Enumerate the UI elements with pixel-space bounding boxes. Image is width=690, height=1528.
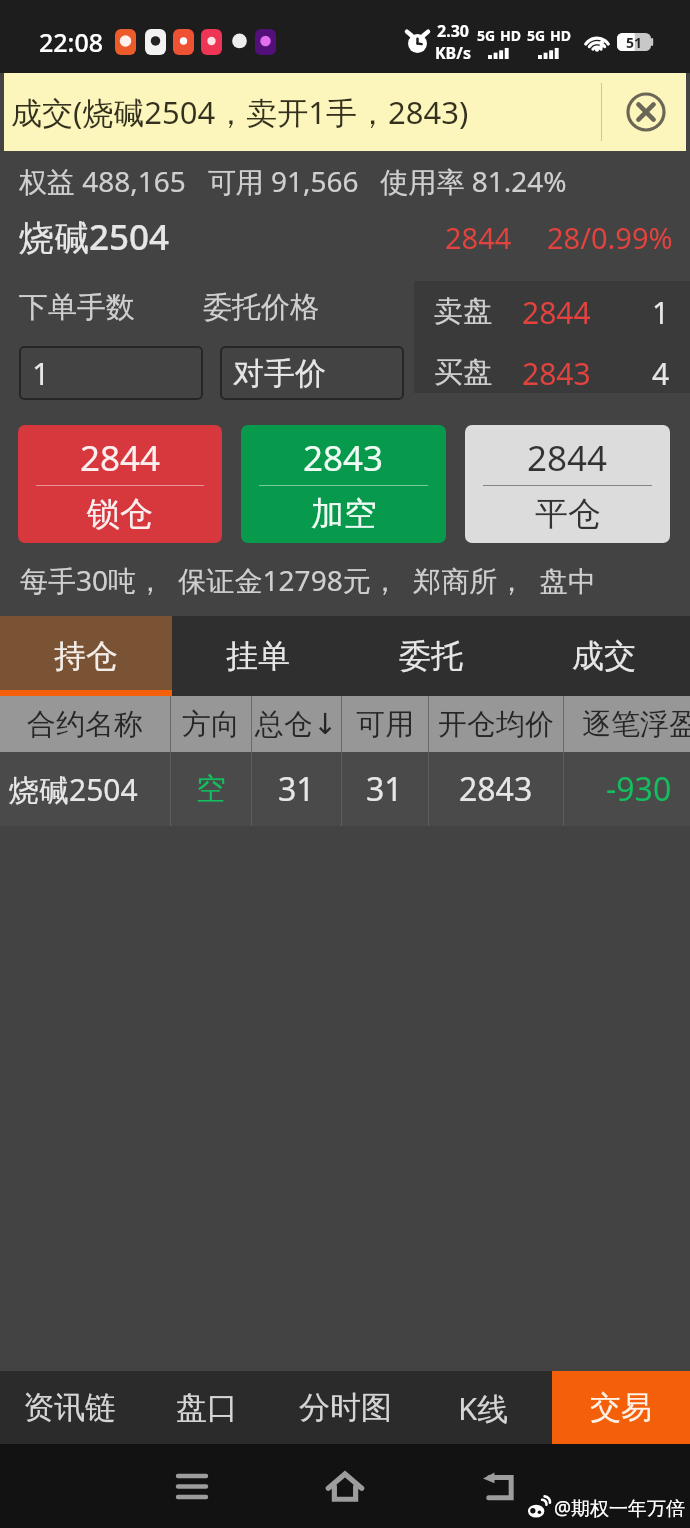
staticText: HD bbox=[550, 26, 571, 45]
button[interactable]: 对手价 bbox=[220, 346, 404, 400]
staticText: 持仓 bbox=[54, 636, 118, 676]
staticText: HD bbox=[500, 26, 521, 45]
button[interactable]: 分时图 bbox=[276, 1371, 414, 1444]
staticText: -930 bbox=[606, 767, 672, 811]
staticText: 盘口 bbox=[176, 1388, 238, 1427]
staticText: KB/s bbox=[435, 42, 471, 64]
button[interactable]: 盘口 bbox=[138, 1371, 276, 1444]
staticText: 2843 bbox=[459, 767, 533, 811]
staticText: 委托价格 bbox=[203, 289, 319, 326]
staticText: 成交(烧碱2504，卖开1手，2843) bbox=[11, 91, 469, 133]
staticText: 权益 488,165 可用 91,566 使用率 81.24% bbox=[19, 162, 567, 200]
button[interactable]: 烧碱2504 bbox=[0, 752, 690, 826]
staticText: 4 bbox=[652, 353, 670, 391]
staticText: 成交 bbox=[572, 636, 636, 676]
staticText: 总仓↓ bbox=[255, 706, 338, 743]
staticText: 烧碱2504 bbox=[9, 769, 138, 810]
staticText: 交易 bbox=[590, 1388, 652, 1427]
staticText: 5G bbox=[527, 26, 546, 45]
staticText: 2844 bbox=[522, 292, 591, 330]
staticText: 买盘 bbox=[434, 354, 492, 391]
staticText: 1 bbox=[32, 352, 50, 394]
button[interactable]: 成交 bbox=[517, 616, 690, 696]
staticText: 卖盘 bbox=[434, 293, 492, 330]
staticText: 锁仓 bbox=[87, 493, 153, 535]
staticText: 空 bbox=[196, 770, 226, 808]
staticText: 逐笔浮盈 bbox=[582, 706, 690, 743]
staticText: 31 bbox=[366, 767, 403, 811]
staticText: 51 bbox=[626, 33, 643, 51]
staticText: 开仓均价 bbox=[438, 706, 554, 743]
button[interactable]: 持仓 bbox=[0, 616, 172, 696]
button[interactable]: 2844 bbox=[465, 425, 670, 543]
staticText: 下单手数 bbox=[19, 289, 135, 326]
button[interactable]: 2843 bbox=[241, 425, 446, 543]
staticText: 2844 bbox=[527, 434, 608, 482]
staticText: 2843 bbox=[303, 434, 384, 482]
staticText: 分时图 bbox=[299, 1388, 392, 1427]
staticText: 2844 bbox=[80, 434, 161, 482]
staticText: 烧碱2504 bbox=[19, 213, 170, 261]
staticText: 2843 bbox=[522, 353, 591, 391]
staticText: 方向 bbox=[182, 706, 240, 743]
button[interactable]: Recent apps bbox=[162, 1468, 222, 1504]
button[interactable]: 1 bbox=[19, 346, 203, 400]
staticText: 1 bbox=[652, 292, 670, 330]
button[interactable]: 资讯链 bbox=[0, 1371, 138, 1444]
staticText: 挂单 bbox=[226, 636, 290, 676]
staticText: 加空 bbox=[311, 493, 377, 535]
button[interactable]: K线 bbox=[414, 1371, 552, 1444]
staticText: 22:08 bbox=[39, 25, 104, 59]
staticText: 2.30 bbox=[437, 20, 469, 42]
button[interactable]: Close bbox=[626, 92, 666, 132]
button[interactable]: 烧碱2504 bbox=[0, 205, 690, 265]
staticText: 委托 bbox=[399, 636, 463, 676]
staticText: 5G bbox=[477, 26, 496, 45]
button[interactable]: Home bbox=[315, 1468, 375, 1504]
staticText: 2844 bbox=[445, 218, 512, 257]
staticText: 可用 bbox=[356, 706, 414, 743]
staticText: 每手30吨， 保证金12798元， 郑商所， 盘中 bbox=[20, 561, 596, 599]
button[interactable]: Back bbox=[469, 1468, 529, 1504]
staticText: 平仓 bbox=[535, 493, 601, 535]
staticText: 合约名称 bbox=[27, 706, 143, 743]
button[interactable]: 挂单 bbox=[172, 616, 344, 696]
staticText: 31 bbox=[278, 767, 315, 811]
button[interactable]: 委托 bbox=[344, 616, 517, 696]
staticText: 资讯链 bbox=[23, 1388, 116, 1427]
staticText: 对手价 bbox=[233, 354, 326, 393]
button[interactable]: 交易 bbox=[552, 1371, 690, 1444]
button[interactable]: 成交(烧碱2504，卖开1手，2843) bbox=[4, 73, 686, 151]
staticText: K线 bbox=[458, 1387, 509, 1429]
button[interactable]: 2844 bbox=[18, 425, 222, 543]
staticText: @期权一年万倍 bbox=[554, 1495, 686, 1521]
staticText: 28/0.99% bbox=[547, 218, 673, 257]
